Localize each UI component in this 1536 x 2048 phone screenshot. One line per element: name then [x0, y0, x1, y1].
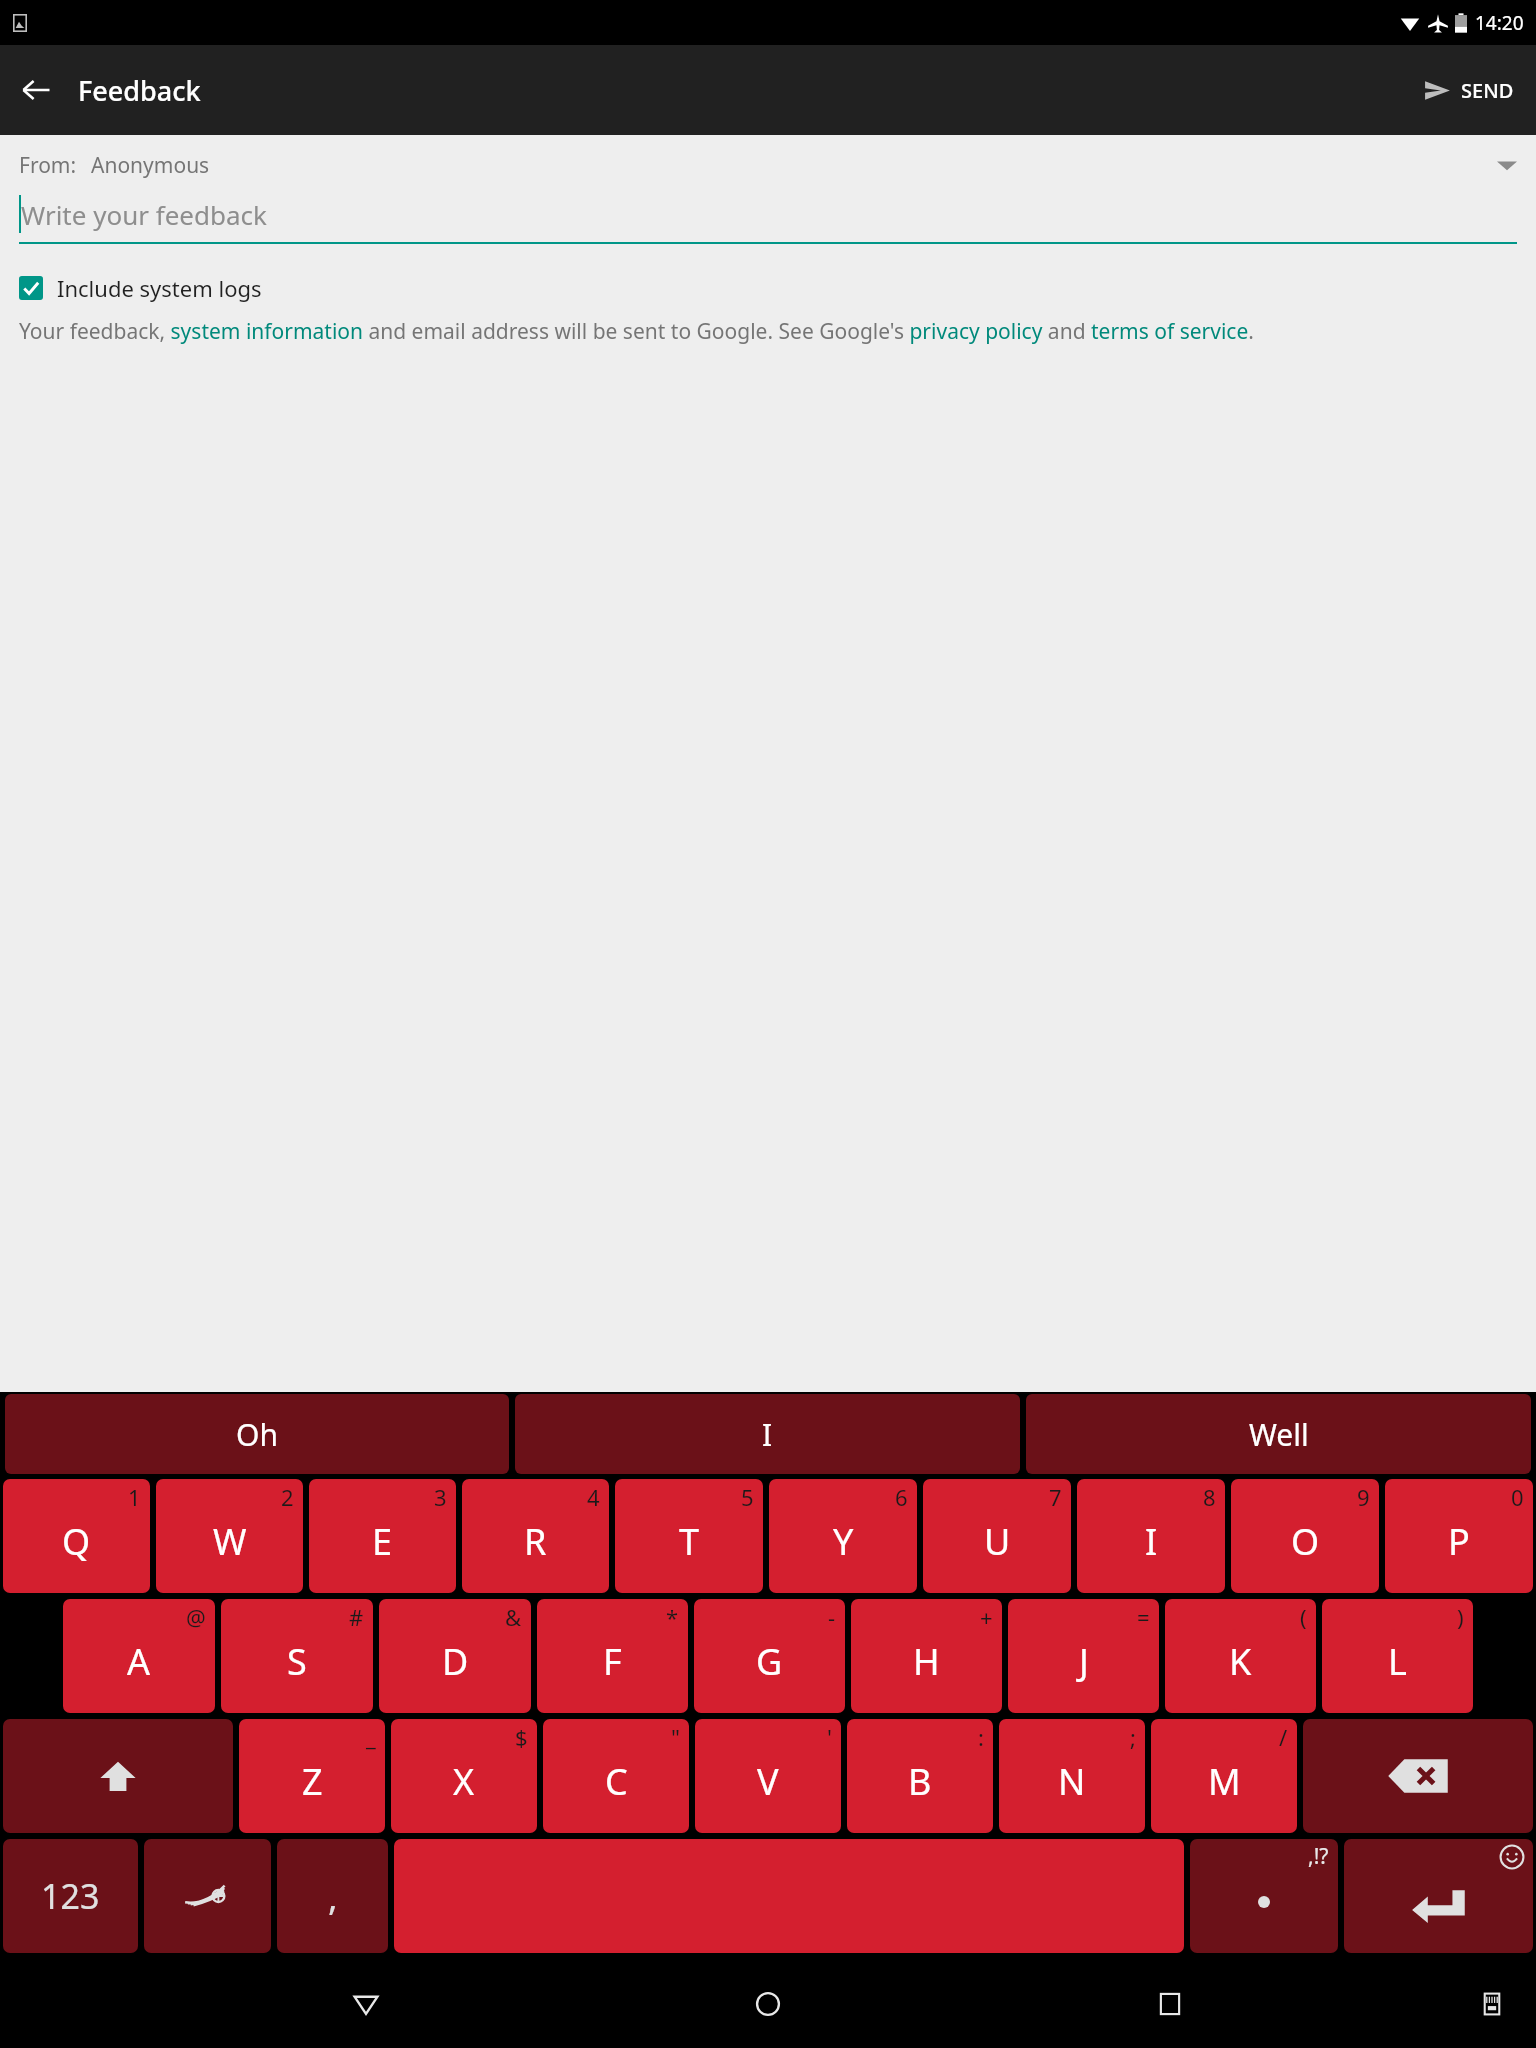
button[interactable]: 2 [156, 1479, 303, 1593]
button[interactable]: I [515, 1394, 1020, 1474]
button[interactable]: $ [391, 1719, 537, 1833]
button[interactable]: 5 [615, 1479, 763, 1593]
button[interactable]: 7 [923, 1479, 1071, 1593]
staticText: : [978, 1722, 984, 1752]
button[interactable]: ( [1165, 1599, 1316, 1713]
button[interactable]: Switch keyboard [1464, 1976, 1520, 2032]
staticText: ) [1457, 1602, 1464, 1632]
button[interactable]: Oh [5, 1394, 509, 1474]
staticText: L [1388, 1637, 1407, 1686]
staticText: 5 [741, 1482, 754, 1512]
button[interactable]: 4 [462, 1479, 609, 1593]
button[interactable]: SEND [1408, 67, 1530, 114]
button[interactable]: + [851, 1599, 1002, 1713]
staticText: U [984, 1517, 1011, 1566]
staticText: 1 [128, 1482, 141, 1512]
button[interactable]: 6 [769, 1479, 917, 1593]
button[interactable]: Back [8, 62, 64, 118]
button[interactable]: * [537, 1599, 688, 1713]
button[interactable]: Include system logs [0, 267, 1536, 309]
staticText: 3 [434, 1482, 447, 1512]
button[interactable]: # [221, 1599, 373, 1713]
staticText: Well [1249, 1414, 1309, 1455]
button[interactable]: Hide keyboard [330, 1968, 402, 2040]
button[interactable]: 8 [1077, 1479, 1225, 1593]
staticText: I [1145, 1517, 1158, 1566]
staticText: 9 [1357, 1482, 1370, 1512]
button[interactable]: " [543, 1719, 689, 1833]
staticText: 2 [281, 1482, 294, 1512]
button[interactable]: 1 [3, 1479, 150, 1593]
staticText: E [372, 1517, 393, 1566]
staticText: Oh [236, 1414, 278, 1455]
button[interactable]: _ [239, 1719, 385, 1833]
button[interactable]: Recents [1134, 1968, 1206, 2040]
button[interactable]: : [847, 1719, 993, 1833]
staticText: Y [833, 1517, 854, 1566]
button[interactable]: 3 [309, 1479, 456, 1593]
staticText: X [453, 1757, 475, 1806]
button[interactable]: Well [1026, 1394, 1531, 1474]
button[interactable]: = [1008, 1599, 1159, 1713]
button[interactable]: Keyboard settings [144, 1839, 271, 1953]
staticText: $ [515, 1722, 528, 1752]
staticText: P [1448, 1517, 1470, 1566]
staticText: From: [19, 151, 77, 180]
button[interactable]: Home [732, 1968, 804, 2040]
staticText: , [328, 1872, 338, 1921]
staticText: 8 [1203, 1482, 1216, 1512]
staticText: Include system logs [57, 273, 262, 303]
staticText: B [908, 1757, 932, 1806]
staticText: 6 [895, 1482, 908, 1512]
button[interactable]: Enter [1344, 1839, 1533, 1953]
staticText: @ [186, 1602, 206, 1632]
staticText: 123 [41, 1873, 100, 1919]
staticText: G [756, 1637, 783, 1686]
button[interactable]: & [379, 1599, 531, 1713]
button[interactable]: 123 [3, 1839, 138, 1953]
button[interactable]: ; [999, 1719, 1145, 1833]
staticText: ,!? [1308, 1842, 1329, 1871]
staticText: Q [62, 1517, 91, 1566]
staticText: H [913, 1637, 940, 1686]
staticText: Write your feedback [21, 197, 267, 232]
staticText: A [127, 1637, 151, 1686]
button[interactable]: Shift [3, 1719, 233, 1833]
button[interactable]: Backspace [1303, 1719, 1533, 1833]
staticText: S [287, 1637, 307, 1686]
button[interactable]: 0 [1385, 1479, 1533, 1593]
button[interactable]: ,!? [1190, 1839, 1338, 1953]
button[interactable]: Your feedback, system information and em… [19, 317, 1517, 346]
button[interactable]: Space [394, 1839, 1184, 1953]
staticText: M [1208, 1757, 1241, 1806]
staticText: 4 [587, 1482, 600, 1512]
staticText: I [762, 1414, 773, 1455]
staticText: T [679, 1517, 700, 1566]
staticText: F [603, 1637, 622, 1686]
staticText: K [1229, 1637, 1252, 1686]
button[interactable]: @ [63, 1599, 215, 1713]
staticText: W [213, 1517, 247, 1566]
button[interactable]: ' [695, 1719, 841, 1833]
staticText: 0 [1511, 1482, 1524, 1512]
button[interactable]: , [277, 1839, 388, 1953]
staticText: D [442, 1637, 469, 1686]
staticText: / [1279, 1722, 1288, 1752]
button[interactable]: / [1151, 1719, 1297, 1833]
button[interactable]: - [694, 1599, 845, 1713]
staticText: Z [302, 1757, 323, 1806]
button[interactable]: Write your feedback [0, 186, 1536, 244]
staticText: ' [827, 1722, 832, 1752]
staticText: C [605, 1757, 628, 1806]
staticText: ( [1300, 1602, 1307, 1632]
staticText: V [757, 1757, 779, 1806]
staticText: Feedback [78, 72, 201, 109]
button[interactable]: From: [0, 135, 1536, 186]
button[interactable]: 9 [1231, 1479, 1379, 1593]
staticText: = [1137, 1602, 1150, 1632]
staticText: ; [1130, 1722, 1136, 1752]
button[interactable]: ) [1322, 1599, 1473, 1713]
staticText: " [671, 1722, 680, 1752]
staticText: N [1058, 1757, 1086, 1806]
staticText: O [1291, 1517, 1320, 1566]
